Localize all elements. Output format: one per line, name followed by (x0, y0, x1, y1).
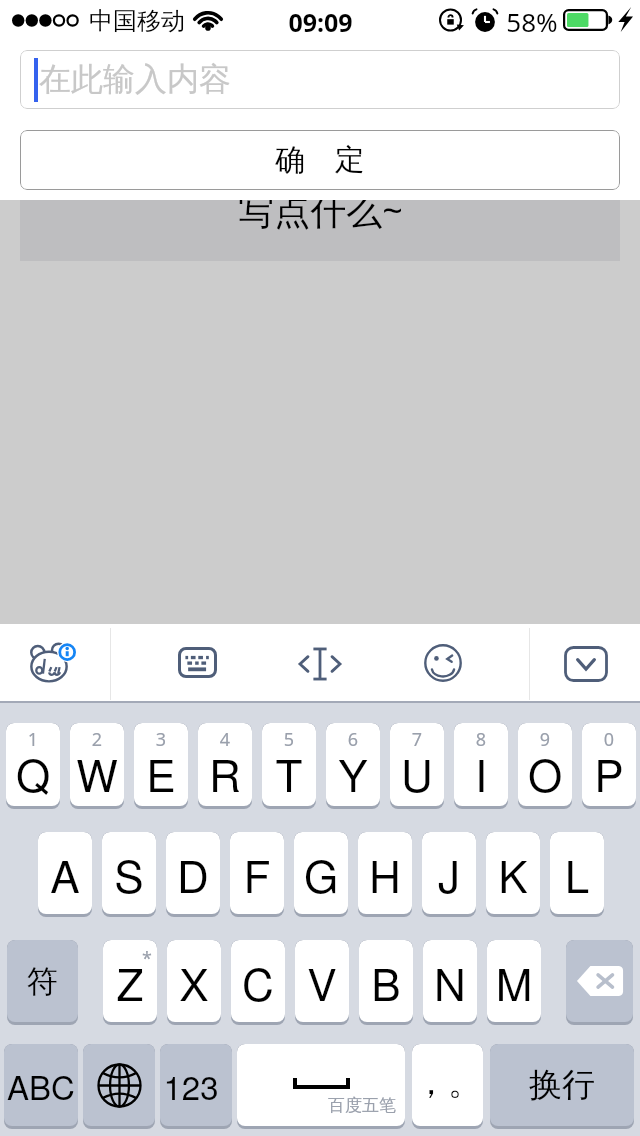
staticText: B (359, 950, 413, 1013)
staticText: 换行 (529, 1064, 595, 1106)
button[interactable]: G (294, 832, 348, 917)
button[interactable]: 7 (390, 723, 444, 809)
staticText: 符 (27, 962, 58, 1001)
staticText: 9 (518, 727, 572, 752)
staticText: G (294, 842, 348, 905)
button[interactable]: 符 (7, 940, 78, 1025)
button[interactable]: ，。 (412, 1044, 483, 1129)
staticText: 7 (390, 727, 444, 752)
staticText: X (167, 950, 221, 1013)
button[interactable]: M (487, 940, 541, 1025)
button[interactable]: 5 (262, 723, 316, 809)
button[interactable]: Move cursor (265, 624, 375, 703)
staticText: 123 (163, 1062, 219, 1109)
staticText: 百度五笔 (237, 1095, 396, 1116)
staticText: W (70, 741, 124, 804)
staticText: ，。 (414, 1061, 482, 1104)
staticText: 写点什么~ (238, 186, 403, 235)
staticText: * (142, 946, 152, 971)
button[interactable]: F (230, 832, 284, 917)
staticText: 在此输入内容 (39, 59, 231, 99)
button[interactable]: 3 (134, 723, 188, 809)
button[interactable]: C (231, 940, 285, 1025)
staticText: N (423, 950, 477, 1013)
staticText: C (231, 950, 285, 1013)
button[interactable]: Emoji (388, 624, 498, 703)
staticText: O (518, 741, 572, 804)
staticText: 中国移动 (89, 6, 185, 36)
staticText: Z (103, 950, 157, 1013)
button[interactable]: 在此输入内容 (20, 50, 620, 109)
staticText: 6 (326, 727, 380, 752)
button[interactable]: B (359, 940, 413, 1025)
button[interactable]: Keyboard layout (142, 624, 252, 703)
button[interactable]: H (358, 832, 412, 917)
staticText: F (230, 842, 284, 905)
staticText: K (486, 842, 540, 905)
staticText: H (358, 842, 412, 905)
staticText: 8 (454, 727, 508, 752)
button[interactable]: V (295, 940, 349, 1025)
button[interactable]: Space (237, 1044, 405, 1129)
staticText: T (262, 741, 316, 804)
button[interactable]: K (486, 832, 540, 917)
button[interactable]: 确 定 (20, 130, 620, 190)
button[interactable]: 4 (198, 723, 252, 809)
button[interactable]: A (38, 832, 92, 917)
staticText: P (582, 741, 636, 804)
button[interactable]: Hide keyboard (530, 624, 640, 703)
staticText: 5 (262, 727, 316, 752)
button[interactable]: 0 (582, 723, 636, 809)
staticText: 58% (506, 4, 558, 39)
staticText: S (102, 842, 156, 905)
button[interactable]: ABC (4, 1044, 78, 1129)
staticText: A (38, 842, 92, 905)
staticText: 2 (70, 727, 124, 752)
staticText: 确 定 (275, 138, 365, 179)
button[interactable]: * (103, 940, 157, 1025)
staticText: 4 (198, 727, 252, 752)
button[interactable]: 123 (160, 1044, 232, 1129)
button[interactable]: Baidu input method (0, 624, 110, 703)
button[interactable]: S (102, 832, 156, 917)
staticText: E (134, 741, 188, 804)
staticText: I (454, 741, 508, 804)
staticText: R (198, 741, 252, 804)
staticText: M (487, 950, 541, 1013)
staticText: 0 (582, 727, 636, 752)
button[interactable]: 6 (326, 723, 380, 809)
button[interactable]: Switch input language (83, 1044, 155, 1129)
button[interactable]: X (167, 940, 221, 1025)
staticText: ABC (7, 1062, 75, 1109)
staticText: Q (6, 741, 60, 804)
staticText: V (295, 950, 349, 1013)
button[interactable]: J (422, 832, 476, 917)
staticText: 3 (134, 727, 188, 752)
staticText: J (422, 842, 476, 905)
button[interactable]: 8 (454, 723, 508, 809)
staticText: Y (326, 741, 380, 804)
button[interactable]: Backspace (566, 940, 633, 1025)
button[interactable]: 9 (518, 723, 572, 809)
button[interactable]: 换行 (490, 1044, 634, 1129)
staticText: 09:09 (288, 5, 353, 39)
staticText: D (166, 842, 220, 905)
button[interactable]: D (166, 832, 220, 917)
button[interactable]: 1 (6, 723, 60, 809)
staticText: 1 (6, 727, 60, 752)
staticText: L (550, 842, 604, 905)
button[interactable]: N (423, 940, 477, 1025)
staticText: U (390, 741, 444, 804)
button[interactable]: 2 (70, 723, 124, 809)
button[interactable]: L (550, 832, 604, 917)
